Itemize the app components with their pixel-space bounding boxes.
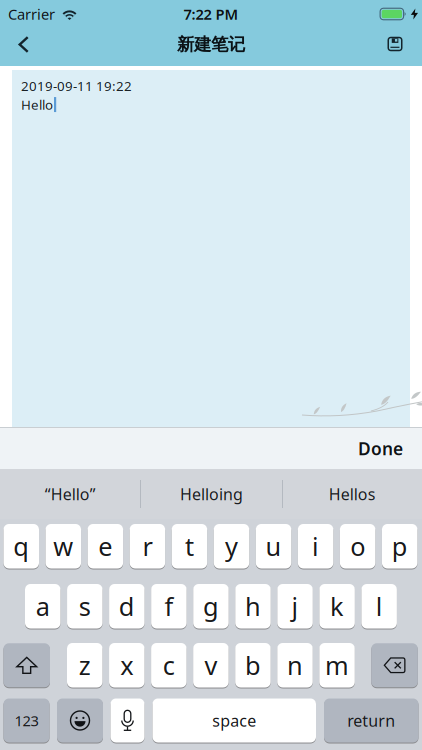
staticText: Carrier [8, 4, 55, 24]
staticText: Helloing [180, 483, 243, 505]
staticText: w [53, 529, 73, 563]
button[interactable]: Hellos [283, 469, 422, 518]
staticText: Hello [21, 96, 53, 113]
staticText: x [120, 648, 133, 682]
staticText: n [287, 648, 303, 682]
staticText: return [347, 710, 395, 731]
staticText: 7:22 PM [183, 4, 238, 24]
button[interactable]: space [152, 698, 316, 743]
button[interactable]: return [324, 698, 418, 743]
button[interactable]: t [172, 523, 207, 569]
button[interactable]: Delete [371, 643, 418, 688]
button[interactable]: f [151, 583, 187, 629]
button[interactable]: s [67, 583, 102, 629]
button[interactable]: Done [358, 437, 403, 460]
button[interactable]: j [277, 583, 313, 629]
button[interactable]: Save [382, 31, 408, 57]
button[interactable]: Numbers [3, 698, 49, 743]
button[interactable]: r [130, 523, 165, 569]
button[interactable]: Dictate [110, 698, 144, 743]
staticText: space [212, 710, 256, 731]
button[interactable]: p [382, 523, 417, 569]
button[interactable]: x [109, 642, 144, 688]
button[interactable]: h [235, 583, 271, 629]
staticText: p [392, 529, 408, 563]
staticText: g [203, 589, 219, 623]
staticText: l [376, 589, 383, 623]
staticText: i [312, 529, 319, 563]
staticText: e [98, 529, 112, 563]
button[interactable]: o [340, 523, 375, 569]
button[interactable]: i [298, 523, 333, 569]
staticText: v [204, 648, 217, 682]
button[interactable]: “Hello” [0, 469, 140, 518]
staticText: r [142, 529, 152, 563]
button[interactable]: c [151, 642, 187, 688]
staticText: f [164, 589, 173, 623]
button[interactable]: Helloing [141, 469, 282, 518]
staticText: t [185, 529, 194, 563]
staticText: Hellos [329, 483, 376, 505]
staticText: c [163, 648, 175, 682]
button[interactable]: v [193, 642, 229, 688]
button[interactable]: e [88, 523, 123, 569]
staticText: q [13, 529, 29, 563]
staticText: s [79, 589, 91, 623]
button[interactable]: z [67, 642, 102, 688]
staticText: d [119, 589, 135, 623]
staticText: “Hello” [45, 483, 96, 505]
staticText: j [292, 589, 299, 623]
button[interactable]: d [109, 583, 145, 629]
staticText: Done [358, 437, 403, 460]
staticText: y [225, 529, 238, 563]
staticText: 2019-09-11 19:22 [21, 77, 132, 95]
button[interactable]: n [277, 642, 313, 688]
button[interactable]: m [319, 642, 355, 688]
button[interactable]: g [193, 583, 229, 629]
staticText: m [325, 648, 349, 682]
staticText: o [350, 529, 365, 563]
button[interactable]: Emoji [57, 698, 103, 743]
button[interactable]: u [256, 523, 291, 569]
button[interactable]: k [319, 583, 355, 629]
button[interactable]: b [235, 642, 271, 688]
button[interactable]: q [3, 523, 39, 569]
staticText: k [330, 589, 344, 623]
staticText: u [266, 529, 282, 563]
button[interactable]: l [361, 583, 397, 629]
staticText: h [245, 589, 261, 623]
staticText: 123 [14, 711, 38, 730]
staticText: b [245, 648, 261, 682]
staticText: 新建笔记 [177, 34, 245, 55]
button[interactable]: Back [9, 29, 39, 59]
button[interactable]: w [45, 523, 81, 569]
staticText: a [36, 589, 50, 623]
button[interactable]: Shift [3, 643, 50, 688]
button[interactable]: a [25, 583, 60, 629]
button[interactable]: y [214, 523, 249, 569]
staticText: z [79, 648, 91, 682]
